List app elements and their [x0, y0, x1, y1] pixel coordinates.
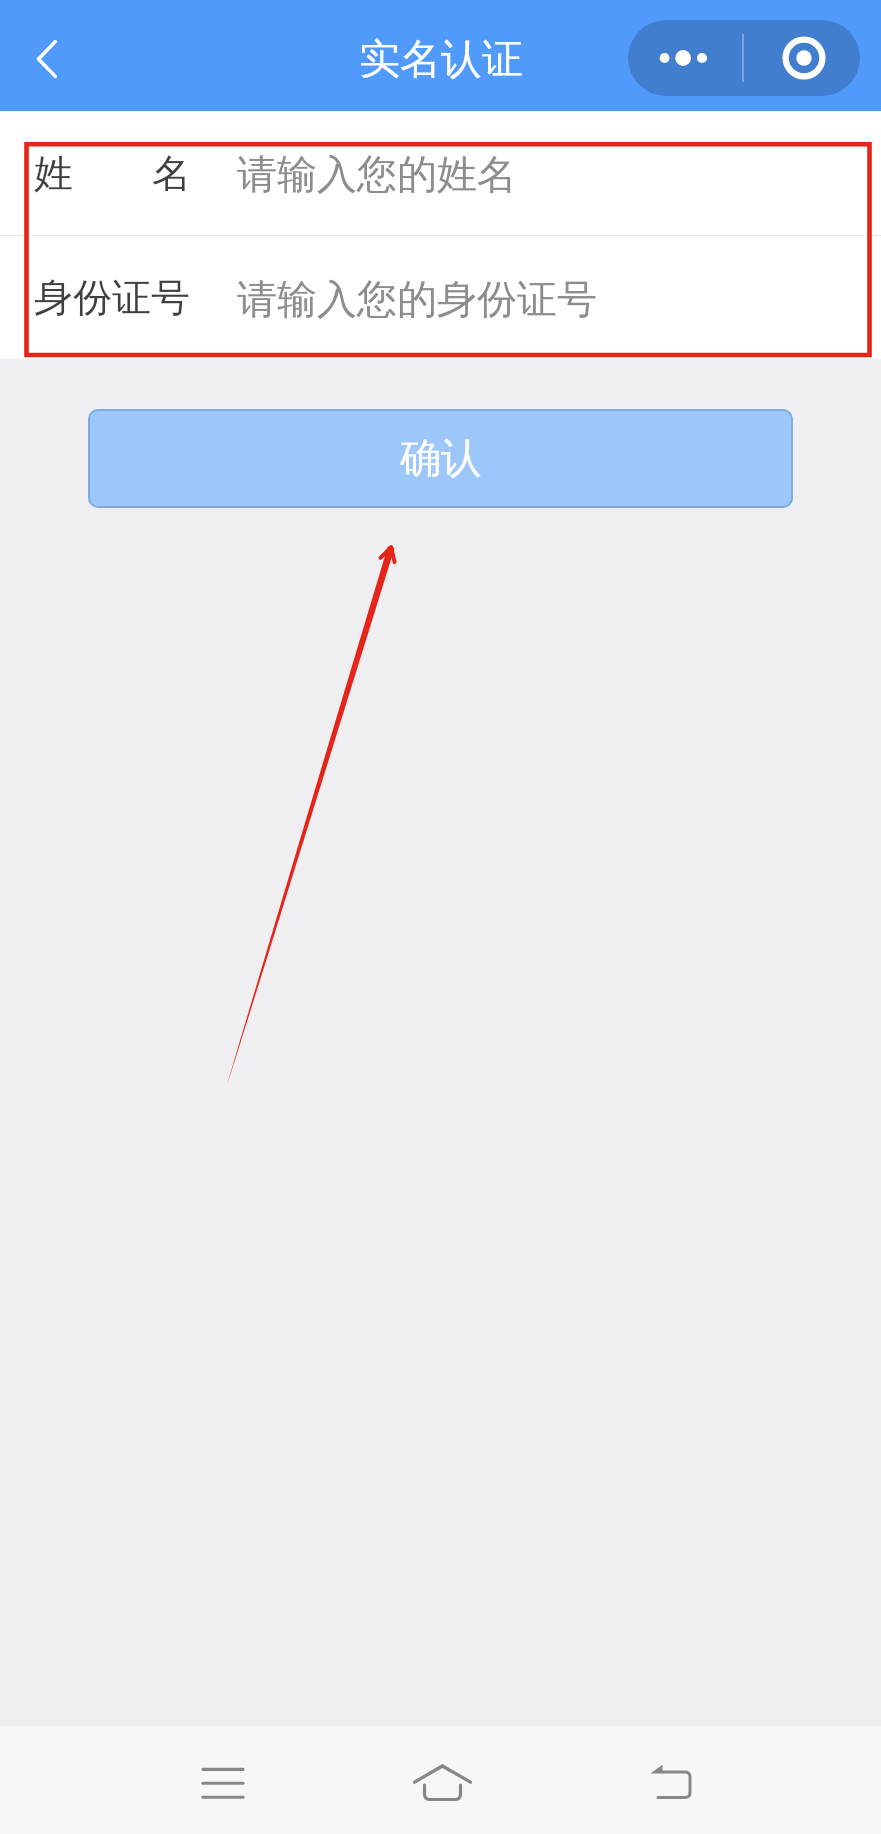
button[interactable]: Close mini program	[744, 20, 860, 96]
button[interactable]: Back	[603, 1728, 745, 1834]
button[interactable]: More options	[628, 20, 742, 96]
staticText: 请输入您的身份证号	[237, 274, 597, 324]
button[interactable]: 姓	[0, 111, 881, 235]
staticText: 身份证号	[34, 273, 190, 322]
button[interactable]: Home	[372, 1729, 514, 1834]
button[interactable]: Back	[0, 0, 94, 111]
button[interactable]: Recent apps	[152, 1729, 294, 1834]
staticText: 实名认证	[359, 34, 523, 86]
staticText: 名	[152, 149, 191, 198]
staticText: 姓	[34, 149, 73, 198]
button[interactable]: 确认	[88, 409, 793, 508]
button[interactable]: 身份证号	[0, 236, 881, 359]
staticText: 确认	[400, 433, 482, 485]
staticText: 请输入您的姓名	[237, 149, 517, 199]
